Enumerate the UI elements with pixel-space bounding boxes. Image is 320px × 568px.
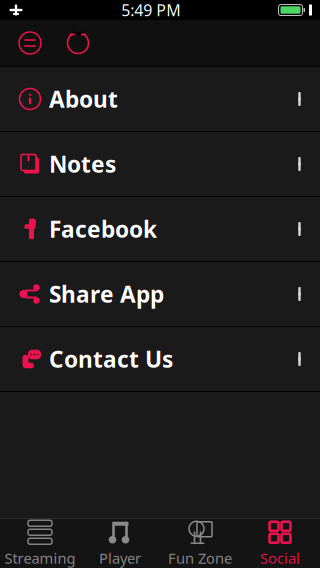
staticText: About: [49, 84, 118, 114]
button[interactable]: Close: [6, 20, 54, 66]
staticText: 5:49 PM: [121, 0, 181, 21]
staticText: Notes: [49, 149, 116, 179]
button[interactable]: Facebook: [0, 197, 320, 261]
button[interactable]: Social: [240, 519, 320, 568]
staticText: Fun Zone: [168, 548, 232, 568]
staticText: Streaming: [4, 548, 75, 568]
button[interactable]: Player: [80, 519, 160, 568]
button[interactable]: Notes: [0, 132, 320, 196]
button[interactable]: About: [0, 67, 320, 131]
staticText: Share App: [49, 279, 164, 309]
button[interactable]: Fun Zone: [160, 519, 240, 568]
staticText: Player: [99, 548, 141, 568]
button[interactable]: Streaming: [0, 519, 80, 568]
staticText: Social: [260, 548, 300, 568]
button[interactable]: Share App: [0, 262, 320, 326]
staticText: Facebook: [49, 214, 157, 244]
button[interactable]: Refresh: [54, 20, 102, 66]
button[interactable]: Contact Us: [0, 327, 320, 391]
staticText: Contact Us: [49, 344, 173, 374]
